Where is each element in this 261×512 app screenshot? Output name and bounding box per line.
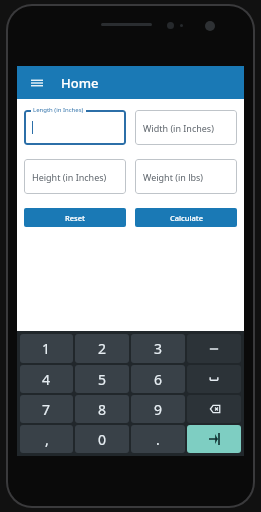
staticText: 1 (42, 339, 51, 358)
button[interactable]: Reset (24, 208, 126, 227)
staticText: Height (in Inches) (32, 171, 107, 183)
button[interactable]: 4 (20, 365, 73, 393)
button[interactable]: Width (in Inches) (135, 110, 237, 145)
button[interactable]: Enter (187, 425, 241, 453)
staticText: Length (in Inches) (33, 106, 84, 114)
button[interactable]: Height (in Inches) (24, 159, 126, 194)
button[interactable]: 0 (75, 425, 129, 453)
staticText: . (156, 430, 160, 449)
staticText: 4 (42, 370, 51, 389)
button[interactable]: Weight (in lbs) (135, 159, 237, 194)
button[interactable]: Space (187, 365, 241, 393)
staticText: 9 (154, 400, 163, 419)
staticText: 2 (98, 339, 107, 358)
button[interactable]: 7 (20, 395, 73, 423)
staticText: , (45, 430, 49, 449)
staticText: Reset (65, 213, 85, 223)
staticText: 6 (154, 370, 163, 389)
button[interactable]: . (131, 425, 185, 453)
button[interactable]: 9 (131, 395, 185, 423)
button[interactable]: 8 (75, 395, 129, 423)
staticText: Calculate (170, 213, 203, 223)
staticText: 7 (42, 400, 51, 419)
button[interactable]: Backspace (187, 395, 241, 423)
button[interactable]: 2 (75, 334, 129, 363)
button[interactable]: 6 (131, 365, 185, 393)
staticText: 5 (98, 370, 107, 389)
staticText: Home (61, 74, 99, 92)
staticText: 3 (154, 339, 163, 358)
button[interactable] (24, 110, 126, 145)
staticText: 0 (98, 430, 107, 449)
button[interactable]: Calculate (135, 208, 237, 227)
button[interactable]: Minus (187, 334, 241, 363)
staticText: Weight (in lbs) (143, 171, 204, 183)
button[interactable]: 1 (20, 334, 73, 363)
staticText: 8 (98, 400, 107, 419)
button[interactable]: 5 (75, 365, 129, 393)
button[interactable]: Open navigation menu (27, 73, 47, 93)
button[interactable]: 3 (131, 334, 185, 363)
button[interactable]: , (20, 425, 73, 453)
staticText: Width (in Inches) (143, 122, 214, 134)
